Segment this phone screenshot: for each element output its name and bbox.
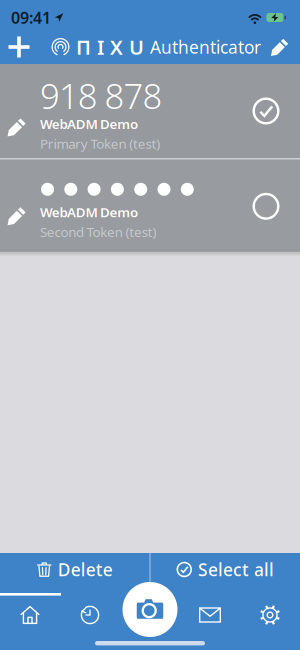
staticText: 918 878 bbox=[40, 72, 162, 118]
button[interactable]: Edit bbox=[260, 37, 300, 57]
button[interactable]: 918 878 bbox=[0, 64, 300, 158]
button[interactable]: Scan QR code bbox=[122, 582, 177, 637]
button[interactable]: Messages bbox=[180, 595, 240, 635]
staticText: X bbox=[110, 34, 123, 60]
button[interactable]: Delete bbox=[0, 553, 149, 586]
button[interactable]: Select all bbox=[150, 553, 300, 586]
staticText: 09:41 bbox=[11, 7, 51, 28]
staticText: Authenticator bbox=[150, 35, 261, 58]
staticText: Second Token (test) bbox=[40, 223, 156, 241]
staticText: U bbox=[129, 34, 144, 60]
button[interactable]: WebADM Demo bbox=[0, 159, 300, 252]
button[interactable]: Edit token bbox=[6, 205, 27, 226]
button[interactable]: Settings bbox=[240, 595, 300, 635]
staticText: I bbox=[97, 34, 104, 60]
staticText: Primary Token (test) bbox=[40, 135, 160, 152]
staticText: WebADM Demo bbox=[40, 115, 138, 133]
button[interactable]: Add token bbox=[0, 36, 37, 57]
button[interactable]: Home bbox=[0, 595, 60, 635]
staticText: Select all bbox=[198, 558, 274, 581]
staticText: WebADM Demo bbox=[40, 203, 138, 221]
staticText: Π bbox=[76, 34, 91, 60]
button[interactable]: Edit token bbox=[6, 116, 27, 137]
button[interactable]: History bbox=[60, 595, 120, 635]
staticText: Delete bbox=[58, 558, 113, 581]
